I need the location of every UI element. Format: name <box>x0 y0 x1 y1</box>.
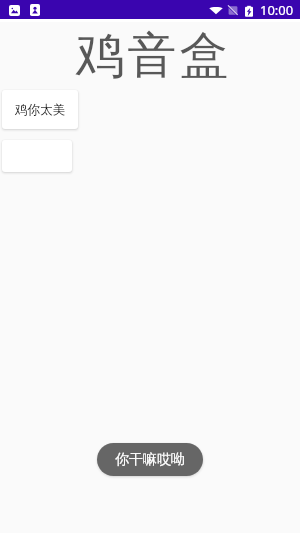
staticText: 鸡音盒 <box>74 25 230 85</box>
staticText: 鸡你太美 <box>15 102 65 118</box>
other: Screenshot <box>9 5 20 16</box>
button[interactable]: 鸡你太美 <box>2 90 78 129</box>
button[interactable]: 你干嘛哎呦 <box>97 443 203 476</box>
staticText: 你干嘛哎呦 <box>115 451 185 469</box>
other: Account <box>30 4 40 16</box>
staticText: 10:00 <box>260 1 294 19</box>
